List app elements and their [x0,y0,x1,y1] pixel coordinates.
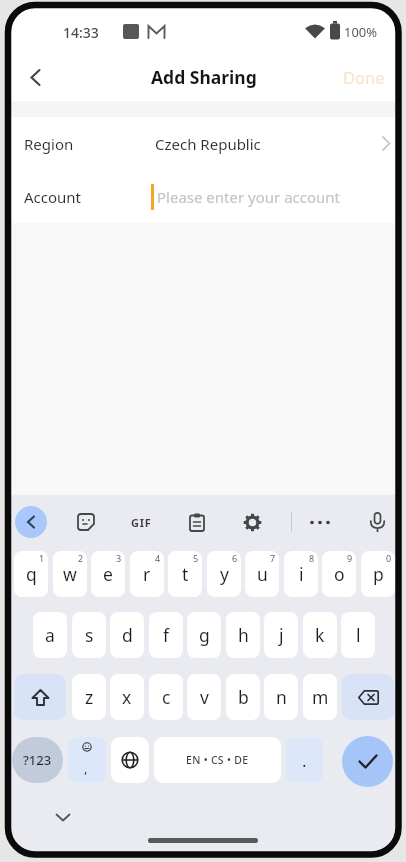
staticText: j [279,623,284,647]
button[interactable] [359,504,396,540]
button[interactable]: e [91,551,125,597]
staticText: . [302,749,307,772]
staticText: 4 [155,552,161,564]
button[interactable]: w [53,551,87,597]
button[interactable]: u [245,551,279,597]
staticText: e [103,562,113,586]
staticText: x [122,685,132,709]
staticText: q [26,562,37,586]
button[interactable]: q [14,551,48,597]
button[interactable]: t [168,551,202,597]
button[interactable]: Done [335,60,392,94]
button[interactable]: o [322,551,356,597]
button[interactable] [68,504,104,540]
button[interactable] [342,736,393,787]
staticText: c [162,685,171,709]
staticText: 100% [344,23,378,41]
button[interactable]: k [303,612,337,658]
staticText: Czech Republic [155,134,261,154]
button[interactable]: a [33,612,67,658]
staticText: Done [343,66,385,88]
staticText: y [220,562,229,586]
button[interactable] [15,57,55,97]
staticText: n [276,685,287,709]
button[interactable] [233,504,271,540]
staticText: 6 [232,552,238,564]
staticText: 8 [309,552,315,564]
staticText: 0 [386,552,392,564]
button[interactable] [342,674,394,720]
button[interactable] [178,504,215,540]
staticText: p [373,562,384,586]
staticText: EN • CS • DE [186,753,249,767]
staticText: ?123 [23,751,52,769]
staticText: m [312,685,329,709]
staticText: Region [24,134,74,154]
button[interactable]: f [149,612,183,658]
staticText: 7 [270,552,276,564]
staticText: k [315,623,325,647]
staticText: h [238,623,249,647]
staticText: l [356,623,361,647]
staticText: 1 [39,552,45,564]
button[interactable]: . [286,737,323,783]
button[interactable] [15,506,47,538]
button[interactable]: x [110,674,144,720]
button[interactable]: m [303,674,337,720]
staticText: , [84,759,88,777]
staticText: o [334,562,345,586]
button[interactable]: n [264,674,298,720]
staticText: Please enter your account [157,187,341,207]
button[interactable]: v [187,674,221,720]
staticText: d [122,623,133,647]
staticText: 5 [193,552,199,564]
button[interactable]: g [187,612,221,658]
staticText: z [85,685,94,709]
staticText: r [143,562,151,586]
staticText: s [85,623,94,647]
staticText: 2 [78,552,84,564]
button[interactable]: r [130,551,164,597]
button[interactable]: Region [11,117,396,170]
staticText: b [238,685,249,709]
button[interactable]: ?123 [12,737,63,783]
button[interactable]: s [72,612,106,658]
staticText: t [182,562,189,586]
button[interactable]: Account [11,171,396,223]
button[interactable]: GIF [121,504,161,540]
button[interactable] [14,674,66,720]
button[interactable] [111,737,149,783]
staticText: a [45,623,55,647]
staticText: w [63,562,77,586]
button[interactable]: i [284,551,318,597]
button[interactable]: b [226,674,260,720]
button[interactable]: j [264,612,298,658]
staticText: u [257,562,268,586]
button[interactable]: y [207,551,241,597]
button[interactable]: EN • CS • DE [154,737,281,783]
staticText: Account [24,187,82,207]
staticText: 14:33 [63,23,99,42]
button[interactable]: z [72,674,106,720]
button[interactable]: l [341,612,375,658]
button[interactable]: p [361,551,395,597]
staticText: f [163,623,170,647]
staticText: GIF [131,515,152,530]
button[interactable]: d [110,612,144,658]
button[interactable]: , [68,737,106,783]
staticText: Add Sharing [151,65,257,89]
staticText: 3 [116,552,122,564]
staticText: i [299,562,304,586]
staticText: v [200,685,209,709]
button[interactable]: c [149,674,183,720]
button[interactable] [301,504,339,540]
button[interactable]: h [226,612,260,658]
staticText: 9 [347,552,353,564]
staticText: g [199,623,210,647]
